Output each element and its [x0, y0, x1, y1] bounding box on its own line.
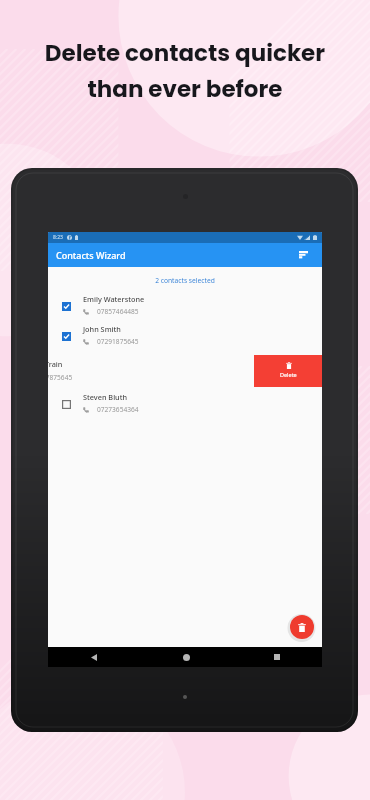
staticText: 07857464485 [97, 307, 139, 316]
button[interactable]: Train [48, 351, 322, 389]
button[interactable]: Home [177, 648, 195, 666]
button[interactable]: Sort contacts [295, 247, 311, 263]
button[interactable]: Delete selected contacts [290, 615, 314, 639]
button[interactable]: Back [85, 648, 103, 666]
button[interactable]: Steven Bluth [48, 389, 322, 419]
staticText: Emily Waterstone [83, 294, 145, 304]
staticText: 07291875645 [97, 337, 139, 346]
staticText: Delete [280, 371, 297, 378]
staticText: Contacts Wizard [56, 249, 126, 261]
staticText: 07875645 [48, 373, 73, 382]
staticText: 8:23 [53, 234, 63, 241]
staticText: Steven Bluth [83, 392, 128, 402]
button[interactable]: John Smith [48, 321, 322, 351]
staticText: 2 contacts selected [155, 276, 215, 285]
staticText: Train [48, 359, 63, 369]
staticText: 07273654364 [97, 405, 139, 414]
staticText: John Smith [83, 324, 121, 334]
staticText: Delete contacts quicker than ever before [0, 37, 370, 105]
button[interactable]: Delete contact [254, 355, 322, 387]
button[interactable]: Emily Waterstone [48, 291, 322, 321]
button[interactable]: Recent apps [268, 648, 286, 666]
